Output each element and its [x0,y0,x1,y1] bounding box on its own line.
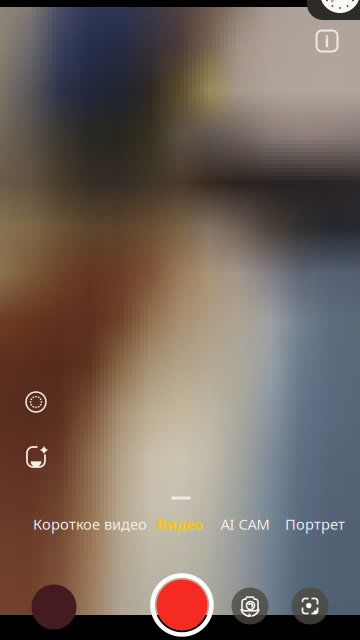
staticText: Короткое видео [33,514,147,534]
button[interactable]: Record [149,572,215,638]
staticText: i [324,30,329,52]
button[interactable]: AI CAM [218,511,272,537]
button[interactable]: Switch camera [230,586,270,626]
staticText: AI CAM [220,514,269,534]
button[interactable]: Портрет [282,511,348,537]
button[interactable]: Короткое видео [30,511,150,537]
button[interactable]: Видео [154,511,206,537]
button[interactable]: AI vision [290,586,330,626]
staticText: Портрет [285,514,345,534]
button[interactable]: Aperture [22,388,50,416]
staticText: Видео [157,514,203,534]
button[interactable]: Last photo [31,584,76,629]
button[interactable]: Info [316,30,337,51]
button[interactable]: Effects [22,443,50,471]
